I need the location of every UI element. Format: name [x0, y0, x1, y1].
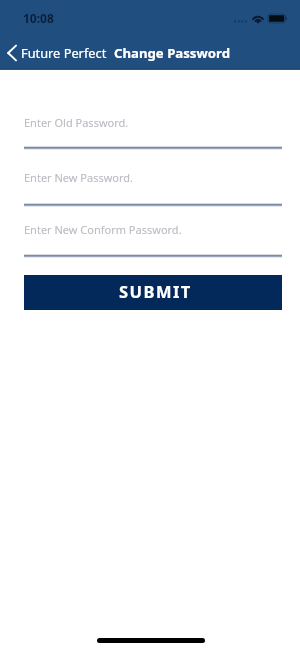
staticText: Enter New Password.	[24, 170, 134, 185]
button[interactable]: Enter Old Password.	[24, 107, 282, 150]
staticText: Enter New Conform Password.	[24, 222, 182, 237]
button[interactable]: SUBMIT	[24, 275, 282, 310]
button[interactable]: Enter New Conform Password.	[24, 214, 282, 258]
staticText: Future Perfect	[21, 44, 107, 61]
button[interactable]: Change Password	[114, 44, 230, 62]
staticText: 10:08	[23, 10, 54, 26]
button[interactable]: Back to Future Perfect	[7, 44, 107, 61]
button[interactable]: Enter New Password.	[24, 162, 282, 207]
staticText: Enter Old Password.	[24, 115, 129, 130]
staticText: SUBMIT	[119, 280, 192, 302]
